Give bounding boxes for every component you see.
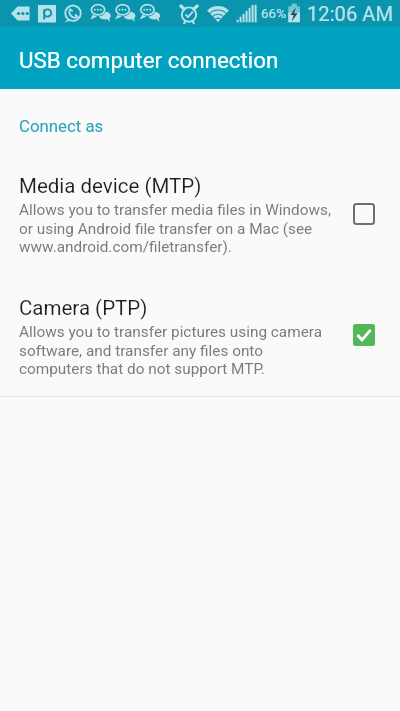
button[interactable]: Connect as — [19, 116, 104, 136]
staticText: www.android.com/filetransfer). — [19, 238, 232, 256]
staticText: software, and transfer any files onto — [19, 342, 263, 360]
button[interactable]: Camera (PTP) — [0, 296, 400, 320]
staticText: Camera (PTP) — [19, 296, 148, 320]
staticText: Allows you to transfer media files in Wi… — [19, 201, 331, 219]
staticText: or using Android file transfer on a Mac … — [19, 220, 313, 238]
button[interactable]: Unchecked — [353, 203, 375, 225]
staticText: computers that do not support MTP. — [19, 360, 265, 378]
staticText: 12:06 AM — [307, 2, 394, 26]
staticText: Allows you to transfer pictures using ca… — [19, 323, 323, 341]
button[interactable]: Checked — [353, 324, 375, 346]
staticText: USB computer connection — [19, 47, 279, 73]
staticText: Connect as — [19, 116, 104, 136]
button[interactable]: Media device (MTP) — [0, 174, 400, 198]
staticText: 66% — [261, 5, 287, 21]
staticText: Media device (MTP) — [19, 174, 202, 198]
